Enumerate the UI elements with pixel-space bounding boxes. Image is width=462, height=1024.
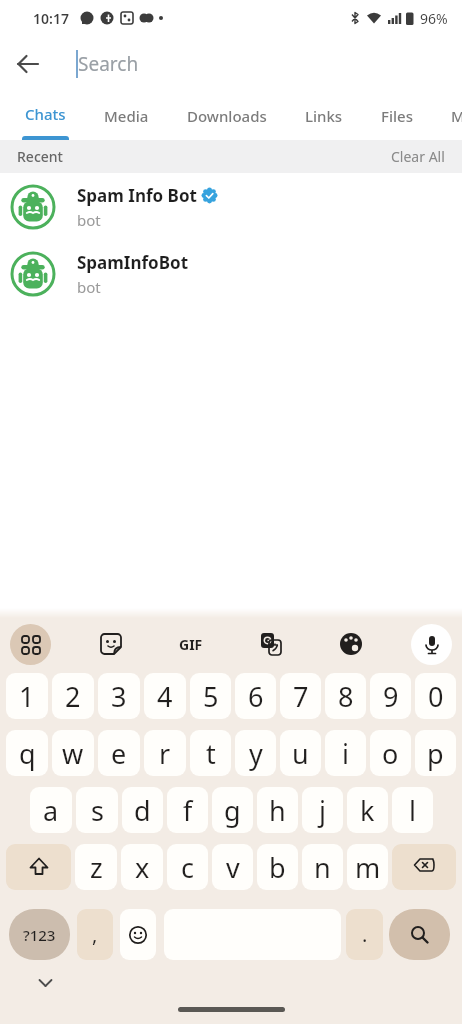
button[interactable]: f [167, 787, 208, 833]
button[interactable]: x [121, 844, 163, 890]
button[interactable] [120, 909, 156, 960]
staticText: bot [77, 277, 101, 297]
staticText: , [92, 921, 98, 948]
button[interactable]: b [257, 844, 298, 890]
button[interactable]: Downloads [168, 92, 286, 140]
button[interactable]: Clear All [391, 147, 445, 166]
button[interactable]: 6 [235, 673, 276, 719]
staticText: w [62, 735, 84, 772]
staticText: Files [381, 106, 413, 126]
staticText: Chats [25, 104, 66, 124]
button[interactable] [392, 844, 456, 890]
staticText: o [382, 735, 399, 772]
staticText: f [183, 792, 193, 829]
button[interactable]: 2 [52, 673, 94, 719]
button[interactable]: u [280, 730, 321, 776]
staticText: 3 [111, 678, 127, 715]
staticText: 0 [428, 678, 444, 715]
staticText: ?123 [23, 925, 56, 945]
staticText: e [111, 735, 127, 772]
button[interactable]: , [77, 909, 113, 960]
staticText: v [226, 849, 240, 886]
button[interactable] [389, 909, 450, 960]
staticText: p [427, 735, 444, 772]
button[interactable]: GIF [171, 624, 211, 664]
button[interactable]: g [212, 787, 253, 833]
button[interactable]: k [347, 787, 388, 833]
staticText: h [269, 792, 286, 829]
staticText: 5 [203, 678, 219, 715]
button[interactable]: i [325, 730, 366, 776]
button[interactable]: j [302, 787, 343, 833]
staticText: t [206, 735, 216, 772]
button[interactable]: SpamInfoBot [0, 240, 462, 307]
button[interactable] [411, 624, 452, 665]
staticText: c [181, 849, 194, 886]
button[interactable] [6, 844, 71, 890]
staticText: Recent [17, 147, 63, 166]
button[interactable]: l [392, 787, 433, 833]
button[interactable]: c [167, 844, 208, 890]
button[interactable]: 7 [280, 673, 321, 719]
staticText: 1 [19, 678, 35, 715]
button[interactable] [0, 36, 56, 92]
staticText: Music [451, 106, 462, 126]
button[interactable]: Media [85, 92, 168, 140]
button[interactable]: v [212, 844, 253, 890]
button[interactable]: 5 [190, 673, 231, 719]
button[interactable]: Music [432, 92, 462, 140]
button[interactable]: 3 [98, 673, 140, 719]
button[interactable] [10, 624, 51, 665]
button[interactable]: n [302, 844, 343, 890]
button[interactable] [91, 624, 131, 664]
staticText: Downloads [187, 106, 267, 126]
button[interactable]: y [235, 730, 276, 776]
button[interactable]: z [75, 844, 117, 890]
button[interactable]: Chats [6, 92, 85, 140]
staticText: g [224, 792, 241, 829]
staticText: q [19, 735, 36, 772]
staticText: 8 [338, 678, 354, 715]
button[interactable]: w [52, 730, 94, 776]
button[interactable]: d [122, 787, 163, 833]
staticText: 2 [65, 678, 81, 715]
button[interactable]: Search [76, 50, 462, 78]
button[interactable]: 4 [144, 673, 186, 719]
staticText: l [409, 792, 416, 829]
button[interactable]: Links [286, 92, 362, 140]
button[interactable]: . [346, 909, 383, 960]
button[interactable] [33, 972, 57, 996]
staticText: m [355, 849, 381, 886]
staticText: r [159, 735, 171, 772]
staticText: b [269, 849, 286, 886]
button[interactable]: h [257, 787, 298, 833]
staticText: k [360, 792, 375, 829]
button[interactable]: Spam Info Bot [0, 173, 462, 240]
button[interactable]: t [190, 730, 231, 776]
button[interactable]: ?123 [9, 909, 70, 960]
button[interactable]: r [144, 730, 186, 776]
button[interactable]: e [98, 730, 140, 776]
button[interactable] [331, 624, 371, 664]
button[interactable]: m [347, 844, 388, 890]
staticText: Links [305, 106, 343, 126]
staticText: n [314, 849, 331, 886]
button[interactable]: 9 [370, 673, 411, 719]
staticText: 96% [420, 9, 448, 28]
button[interactable]: s [76, 787, 118, 833]
button[interactable]: Files [362, 92, 432, 140]
staticText: s [91, 792, 104, 829]
button[interactable]: p [415, 730, 456, 776]
button[interactable]: a [30, 787, 72, 833]
staticText: 9 [383, 678, 399, 715]
staticText: j [319, 792, 326, 829]
button[interactable]: 8 [325, 673, 366, 719]
staticText: GIF [179, 635, 203, 654]
button[interactable]: 0 [415, 673, 456, 719]
button[interactable] [251, 624, 291, 664]
button[interactable]: o [370, 730, 411, 776]
button[interactable]: q [6, 730, 48, 776]
button[interactable]: 1 [6, 673, 48, 719]
staticText: z [90, 849, 103, 886]
